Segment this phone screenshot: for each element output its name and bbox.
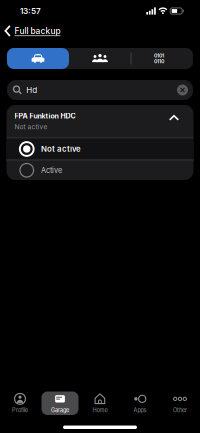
button[interactable]: Vehicle (7, 48, 69, 69)
staticText: 13:57 (20, 6, 41, 16)
staticText: 0110 (154, 58, 164, 64)
button[interactable]: Drivers (69, 48, 131, 69)
staticText: Active (41, 166, 62, 175)
button[interactable]: Active (6, 160, 193, 180)
staticText: Not active (14, 123, 47, 131)
staticText: Not active (41, 144, 81, 154)
staticText: Hd (26, 85, 37, 95)
staticText: Home (92, 407, 107, 414)
button[interactable]: Collapse FPA Funktion HDC (6, 105, 193, 137)
button[interactable]: Apps (121, 391, 158, 415)
staticText: Profile (12, 407, 28, 414)
staticText: Garage (51, 407, 69, 414)
button[interactable]: Other (161, 391, 198, 415)
button[interactable]: Home (81, 391, 118, 415)
staticText: 0101 (154, 52, 164, 59)
button[interactable]: Data (128, 48, 190, 69)
button[interactable]: Garage (41, 391, 78, 415)
staticText: Full backup (14, 26, 60, 36)
button[interactable]: Profile (1, 391, 38, 415)
staticText: Other (173, 407, 187, 414)
button[interactable]: Back to Full backup (0, 26, 60, 36)
button[interactable]: Not active, selected (6, 138, 193, 159)
button[interactable]: Clear search text (177, 84, 193, 95)
staticText: FPA Funktion HDC (14, 112, 75, 120)
staticText: Apps (133, 407, 146, 414)
